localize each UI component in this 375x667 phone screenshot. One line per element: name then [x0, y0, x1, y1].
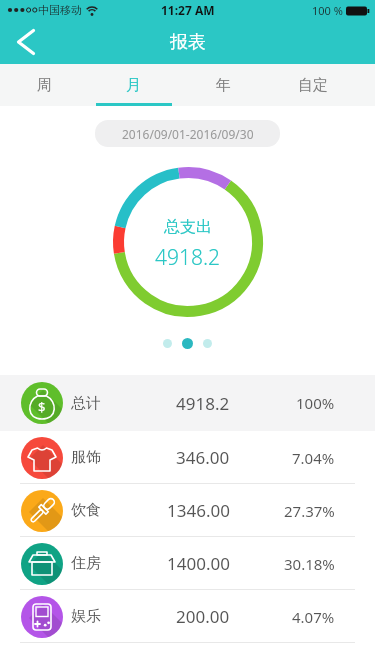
staticText: 服饰: [71, 448, 101, 467]
staticText: $: [38, 398, 46, 416]
staticText: 总支出: [164, 217, 212, 237]
button[interactable]: 娱乐: [0, 590, 375, 643]
staticText: 346.00: [176, 446, 230, 469]
button[interactable]: $: [0, 375, 375, 431]
staticText: 7.04%: [292, 448, 335, 468]
staticText: 100%: [296, 393, 335, 413]
button[interactable]: 2016/09/01-2016/09/30: [95, 120, 280, 147]
button[interactable]: 年: [178, 64, 268, 106]
staticText: 总计: [71, 394, 101, 413]
staticText: 娱乐: [71, 607, 101, 626]
staticText: 100 %: [312, 3, 343, 18]
staticText: 年: [216, 76, 231, 95]
staticText: 周: [37, 76, 52, 95]
staticText: 饮食: [71, 501, 101, 520]
staticText: 4.07%: [292, 607, 335, 627]
button[interactable]: 服饰: [0, 431, 375, 484]
button[interactable]: 自定: [268, 64, 358, 106]
staticText: 4918.2: [176, 392, 230, 415]
staticText: 200.00: [176, 605, 230, 628]
button[interactable]: 月: [89, 64, 178, 106]
button[interactable]: [6, 22, 46, 62]
staticText: 1400.00: [167, 552, 230, 575]
staticText: 1346.00: [167, 499, 230, 522]
staticText: 30.18%: [284, 554, 335, 574]
button[interactable]: 住房: [0, 537, 375, 590]
staticText: 11:27 AM: [161, 2, 215, 18]
staticText: 住房: [71, 554, 101, 573]
staticText: 月: [126, 76, 141, 95]
staticText: 自定: [298, 76, 328, 95]
staticText: 27.37%: [284, 501, 335, 521]
staticText: 中国移动: [38, 3, 82, 17]
button[interactable]: 饮食: [0, 484, 375, 537]
staticText: 2016/09/01-2016/09/30: [122, 126, 254, 142]
staticText: 4918.2: [155, 243, 221, 272]
button[interactable]: 周: [0, 64, 89, 106]
staticText: 报表: [170, 31, 206, 54]
